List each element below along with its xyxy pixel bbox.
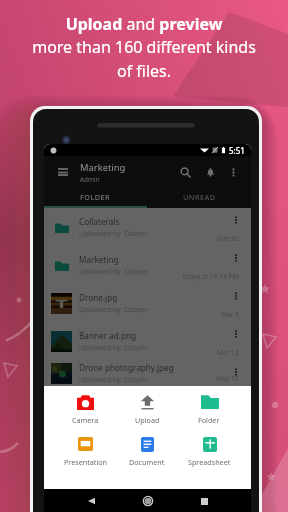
button[interactable]: Item options (228, 326, 244, 342)
staticText: Document (129, 457, 165, 467)
button[interactable]: Drone.jpg (44, 284, 251, 322)
button[interactable]: Search (176, 163, 194, 181)
button[interactable]: Camera (55, 394, 116, 425)
button[interactable]: Item options (228, 212, 244, 228)
staticText: Folder (198, 415, 220, 425)
button[interactable]: Spreadsheet (178, 436, 240, 467)
button[interactable]: Collaterals (44, 208, 251, 246)
button[interactable]: Document (116, 436, 178, 467)
staticText: Drone.jpg (79, 292, 118, 303)
button[interactable]: FOLDER (44, 188, 147, 206)
button[interactable]: Navigation menu (54, 163, 72, 181)
staticText: Mar 30 (217, 234, 239, 243)
staticText: Uploaded by Cooper (79, 305, 149, 315)
staticText: UNREAD (183, 192, 216, 202)
button[interactable]: Drone photography.jpeg (44, 360, 251, 386)
button[interactable]: Item options (228, 288, 244, 304)
staticText: May 10 (216, 374, 239, 383)
staticText: Marketing (79, 254, 119, 265)
staticText: Uploaded by Cooper (79, 267, 149, 277)
staticText: Mar 9 (221, 310, 239, 319)
staticText: 5:51 (229, 145, 245, 156)
staticText: Uploaded by Cooper (79, 343, 149, 353)
button[interactable]: UNREAD (147, 188, 251, 206)
button[interactable]: Notifications (201, 163, 219, 181)
staticText: Mar 12 (217, 348, 239, 357)
staticText: Camera (72, 415, 99, 425)
staticText: Collaterals (79, 216, 120, 227)
staticText: Presentation (64, 457, 108, 467)
button[interactable]: More options (224, 163, 242, 181)
staticText: Uploaded by Cooper (79, 229, 149, 239)
button[interactable]: Folder (178, 394, 240, 425)
button[interactable]: Item options (228, 364, 244, 380)
staticText: FOLDER (80, 192, 111, 202)
button[interactable]: Presentation (55, 436, 116, 467)
staticText: Upload and preview more than 160 differe… (32, 13, 256, 82)
button[interactable]: Marketing (44, 246, 251, 284)
button[interactable]: Navigation menu (44, 156, 251, 188)
staticText: Banner ad.png (79, 330, 137, 341)
staticText: Spreadsheet (188, 457, 231, 467)
button[interactable]: Back (81, 491, 101, 511)
button[interactable]: Home (138, 491, 158, 511)
button[interactable]: Item options (228, 250, 244, 266)
button[interactable]: Banner ad.png (44, 322, 251, 360)
staticText: Marketing (80, 161, 126, 174)
button[interactable]: Recent apps (194, 491, 214, 511)
button[interactable]: Upload (116, 394, 178, 425)
staticText: Drone photography.jpeg (79, 362, 174, 373)
staticText: Upload (135, 415, 160, 425)
staticText: Admin (80, 175, 100, 184)
staticText: Today at 16:13 PM (182, 272, 239, 281)
staticText: Uploaded by Cooper (79, 375, 149, 385)
